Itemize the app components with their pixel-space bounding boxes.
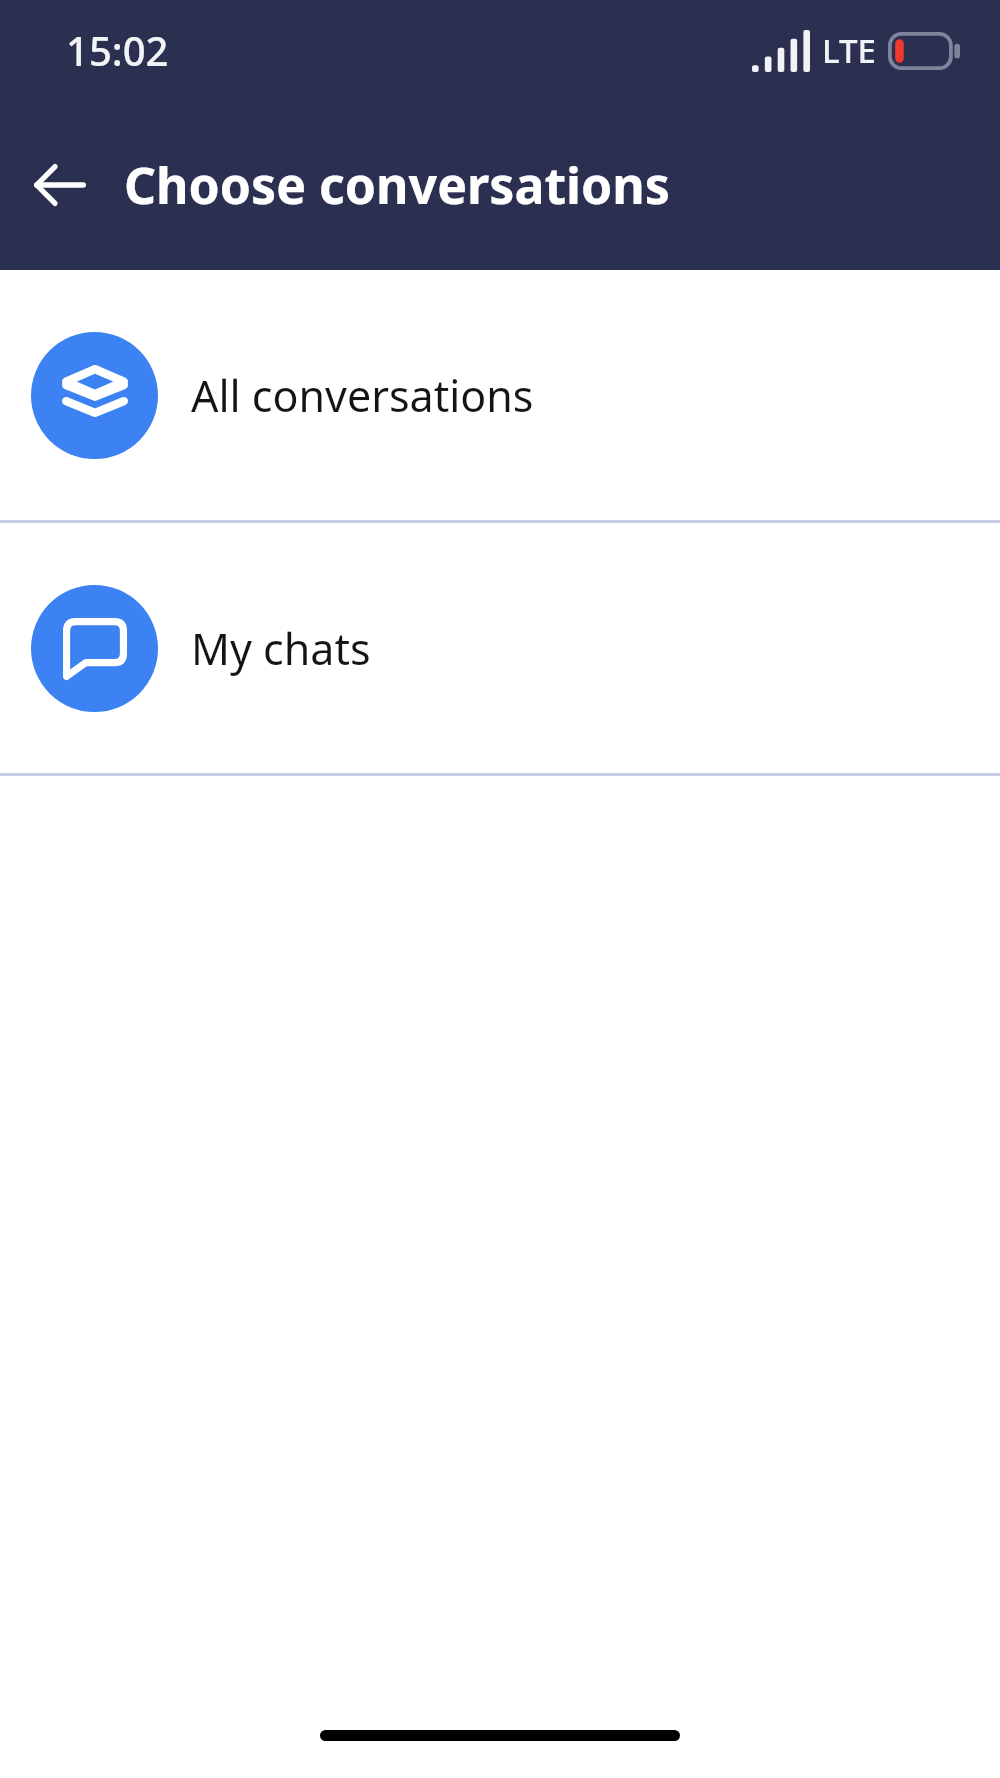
staticText: My chats [191,619,371,678]
button[interactable]: Back [18,143,102,227]
staticText: LTE [822,28,876,73]
staticText: All conversations [191,366,534,425]
button[interactable]: My chats [0,523,1000,773]
staticText: Choose conversations [124,151,670,219]
staticText: 15:02 [66,23,169,77]
button[interactable]: All conversations [0,270,1000,520]
